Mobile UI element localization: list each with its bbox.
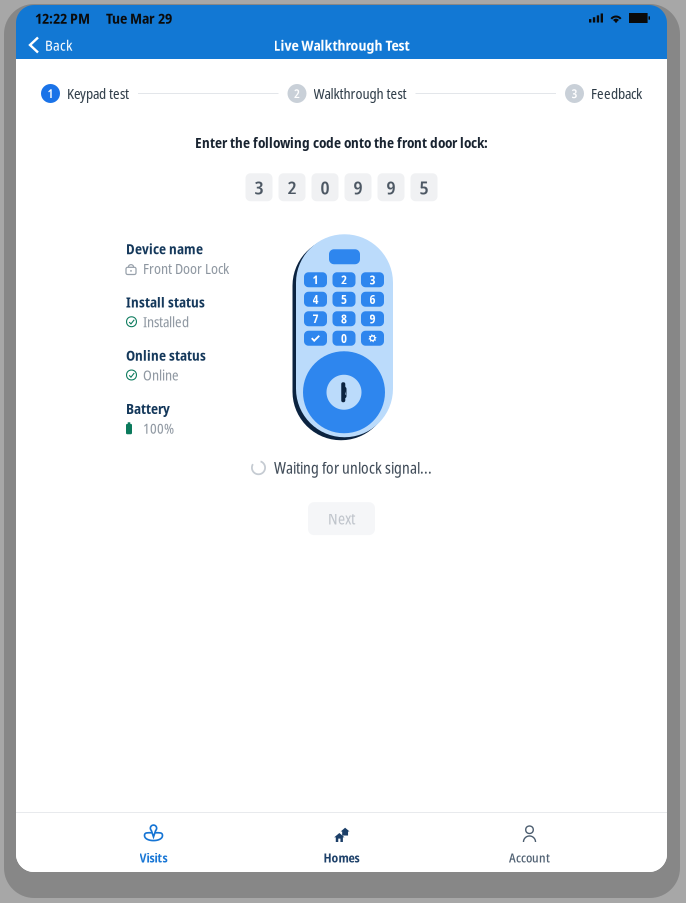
staticText: Walkthrough test: [313, 84, 406, 103]
button[interactable]: Next: [308, 502, 375, 535]
button[interactable]: Visits: [59, 813, 247, 872]
staticText: 9: [386, 174, 395, 200]
staticText: 0: [320, 174, 329, 200]
staticText: 8: [341, 311, 347, 327]
staticText: 5: [341, 291, 347, 307]
staticText: Enter the following code onto the front …: [195, 133, 488, 152]
staticText: Tue Mar 29: [106, 8, 172, 28]
button[interactable]: Homes: [247, 813, 435, 872]
staticText: Waiting for unlock signal...: [274, 457, 432, 478]
staticText: Next: [328, 508, 355, 529]
staticText: Keypad test: [67, 84, 129, 103]
staticText: 3: [369, 272, 375, 288]
staticText: 1: [312, 272, 318, 288]
staticText: 7: [312, 311, 318, 327]
staticText: 2: [341, 272, 347, 288]
staticText: Homes: [323, 849, 359, 866]
staticText: Installed: [143, 312, 189, 331]
staticText: 9: [369, 311, 375, 327]
staticText: 0: [341, 330, 347, 346]
staticText: 2: [294, 85, 300, 102]
staticText: Back: [45, 35, 72, 55]
staticText: Live Walkthrough Test: [273, 35, 409, 55]
staticText: 100%: [143, 419, 174, 438]
staticText: Online: [143, 365, 179, 385]
staticText: 9: [353, 174, 362, 200]
staticText: 6: [369, 291, 375, 307]
button[interactable]: Back: [21, 30, 81, 60]
staticText: 2: [287, 174, 296, 200]
staticText: Install status: [126, 292, 205, 312]
staticText: 4: [312, 291, 318, 307]
staticText: Front Door Lock: [143, 259, 229, 278]
staticText: Account: [509, 849, 550, 866]
staticText: Visits: [139, 849, 167, 866]
staticText: 12:22 PM: [35, 8, 90, 28]
staticText: Device name: [126, 239, 203, 258]
button[interactable]: Account: [435, 813, 623, 872]
staticText: 3: [254, 174, 263, 200]
staticText: 3: [571, 85, 577, 102]
staticText: Feedback: [591, 84, 642, 103]
staticText: 1: [47, 85, 53, 102]
staticText: 5: [419, 174, 428, 200]
staticText: Online status: [126, 346, 206, 365]
staticText: Battery: [126, 399, 170, 418]
